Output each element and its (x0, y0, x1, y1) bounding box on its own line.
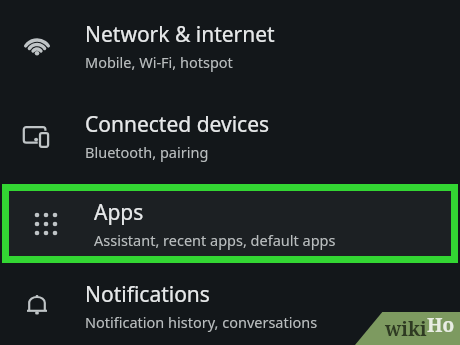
staticText: Connected devices (85, 110, 270, 139)
other: Notifications (22, 291, 52, 321)
other: Apps (31, 209, 61, 239)
other: Connected devices (22, 121, 52, 151)
other: Network and internet (22, 31, 52, 61)
staticText: Assistant, recent apps, default apps (94, 230, 336, 250)
staticText: wiki (385, 316, 427, 342)
button[interactable]: Connected devices (0, 91, 460, 181)
staticText: Mobile, Wi-Fi, hotspot (85, 52, 233, 72)
button[interactable]: Notifications (0, 266, 460, 345)
button[interactable]: Network and internet (0, 0, 460, 91)
staticText: Network & internet (85, 20, 275, 49)
staticText: Bluetooth, pairing (85, 142, 209, 162)
button[interactable]: Apps (2, 184, 458, 263)
staticText: How (427, 312, 460, 345)
staticText: Apps (94, 198, 144, 227)
staticText: Notification history, conversations (85, 312, 318, 332)
staticText: Notifications (85, 280, 210, 309)
